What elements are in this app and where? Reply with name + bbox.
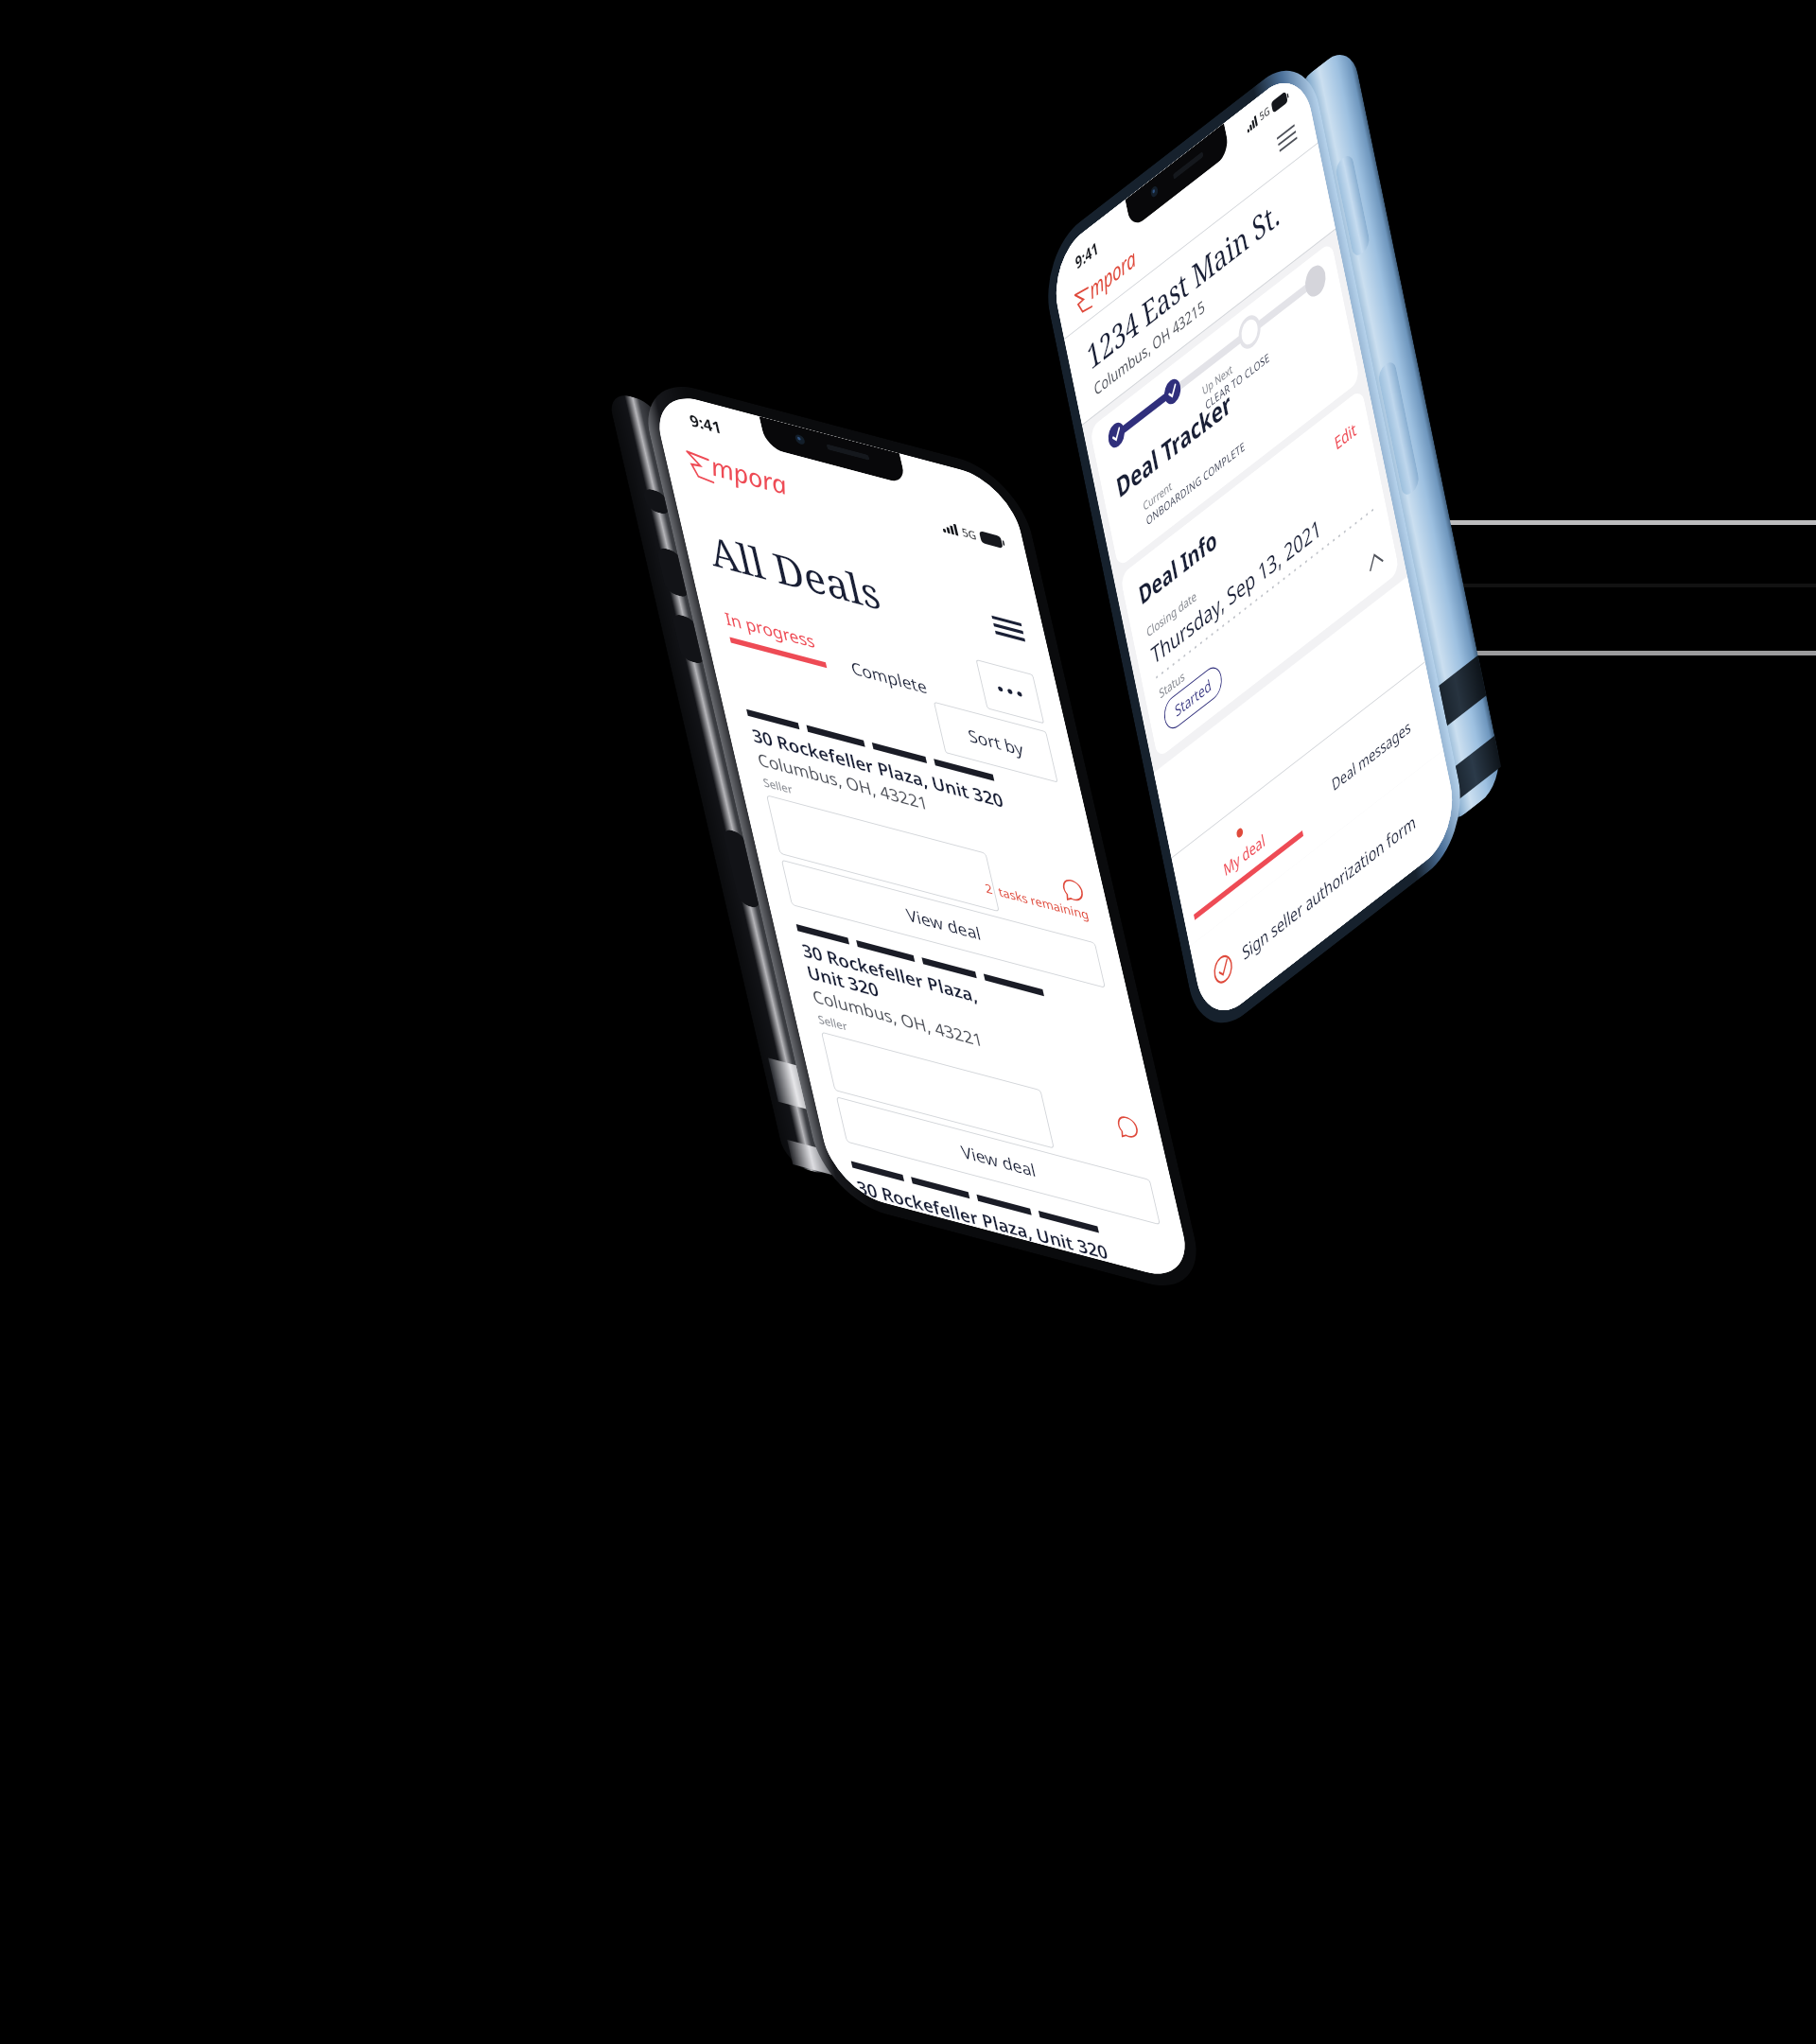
staticText: Thursday, Sep 13, 2021	[1142, 480, 1330, 702]
button[interactable]: Menu	[1273, 120, 1301, 156]
staticText: Seller	[810, 1000, 855, 1045]
staticText: 5G	[1255, 101, 1274, 127]
button[interactable]: Edit	[1328, 413, 1364, 460]
button[interactable]: Deal messages	[1280, 639, 1462, 871]
staticText: Columbus, OH 43215	[1088, 275, 1211, 421]
staticText: All Deals	[681, 457, 907, 687]
staticText: In progress	[714, 573, 826, 688]
button[interactable]: My deal	[1153, 737, 1335, 969]
staticText: Deal Info	[1129, 507, 1226, 626]
button[interactable]: View deal	[819, 978, 1178, 1343]
button[interactable]: Menu	[984, 604, 1033, 653]
staticText: Sort by	[957, 703, 1035, 783]
staticText: Deal messages	[1326, 701, 1417, 810]
staticText: View deal	[950, 1111, 1048, 1211]
staticText: View deal	[895, 875, 993, 974]
staticText: CLEAR TO CLOSE	[1201, 337, 1274, 424]
button[interactable]: Complete	[840, 627, 939, 728]
staticText: Up Next	[1198, 355, 1237, 404]
staticText: Closing date	[1142, 578, 1201, 650]
staticText: My deal	[1217, 821, 1271, 889]
staticText: Edit	[1328, 413, 1364, 460]
staticText: mpora	[1080, 232, 1145, 314]
button[interactable]: View deal	[764, 742, 1123, 1106]
button[interactable]: More options	[957, 638, 1063, 745]
staticText: Deal Tracker	[1106, 363, 1242, 527]
staticText: Sign seller authorization form	[1235, 777, 1423, 997]
staticText: 9:41	[1069, 232, 1104, 278]
staticText: Columbus, OH, 43221	[801, 920, 994, 1117]
staticText: mpora	[693, 419, 803, 531]
staticText: 2 tasks remaining	[977, 840, 1097, 962]
staticText: 30 Rockefeller Plaza, Unit 320	[846, 1080, 1118, 1357]
staticText: Columbus, OH, 43221	[746, 683, 939, 880]
button[interactable]: 30 Rockefeller Plaza, Unit 320	[832, 1034, 1190, 1397]
staticText: ONBOARDING COMPLETE	[1142, 419, 1250, 546]
staticText: 5G	[954, 518, 984, 549]
staticText: Started	[1169, 667, 1217, 728]
button[interactable]: 30 Rockefeller Plaza, Unit 320	[664, 582, 1188, 1116]
staticText: Complete	[840, 627, 939, 728]
button[interactable]: Sign seller authorization form	[1188, 722, 1463, 1059]
staticText: 30 Rockefeller Plaza, Unit 320	[740, 628, 1016, 908]
button[interactable]: In progress	[709, 570, 840, 704]
staticText: Seller	[756, 763, 800, 808]
staticText: 1234 East Main St.	[1075, 156, 1292, 414]
staticText: Status	[1154, 662, 1190, 707]
button[interactable]: 30 Rockefeller Plaza, Unit 320	[705, 797, 1251, 1353]
staticText: Current	[1139, 472, 1176, 519]
staticText: 9:41	[679, 397, 732, 451]
button[interactable]: Sort by	[914, 659, 1077, 825]
staticText: 30 Rockefeller Plaza, Unit 320	[782, 872, 1003, 1097]
